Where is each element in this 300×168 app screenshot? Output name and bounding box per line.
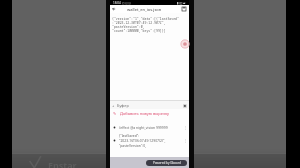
- staticText: "2023-16T06:07:49:12907(2)",: [119, 138, 166, 143]
- staticText: ⋮: [184, 139, 188, 143]
- staticText: {"lastSaved":: [119, 133, 140, 138]
- staticText: {"version":"1","data":[{"lastSaved": [112, 17, 179, 21]
- staticText: +: [112, 103, 115, 108]
- staticText: ▮ ◰ ▰: [177, 1, 186, 5]
- staticText: Буфер: [117, 103, 129, 108]
- staticText: 18:04: [113, 1, 121, 5]
- staticText: ⋮: [184, 126, 188, 130]
- staticText: ▣: [183, 103, 187, 108]
- staticText: Fnstar: [48, 159, 77, 168]
- staticText: wallet_en_ios.json: [127, 7, 162, 12]
- button[interactable]: Record: [180, 39, 190, 49]
- button[interactable]: Back: [110, 5, 118, 13]
- staticText: ✎: [113, 111, 117, 116]
- staticText: "count":100000,"keys":[99]}]: [112, 29, 166, 33]
- button[interactable]: {"lastSaved":: [110, 133, 189, 148]
- button[interactable]: /effect @a night_vision 999999: [110, 125, 189, 130]
- staticText: Добавить новую вырезку: [120, 111, 170, 116]
- button[interactable]: Save: [180, 5, 188, 13]
- staticText: :"2023-12-30T07:49:12.907Z",: [112, 21, 166, 25]
- staticText: /effect @a night_vision 999999: [119, 125, 168, 130]
- staticText: Powered by Gboard: [153, 161, 181, 165]
- staticText: ◰ ◱ ◲: [122, 1, 131, 5]
- staticText: "pasteVersion":0,: [112, 25, 145, 29]
- button[interactable]: Powered by Gboard: [146, 160, 187, 166]
- button[interactable]: ✎: [110, 109, 189, 118]
- staticText: "pasteVersion":0,: [119, 143, 147, 148]
